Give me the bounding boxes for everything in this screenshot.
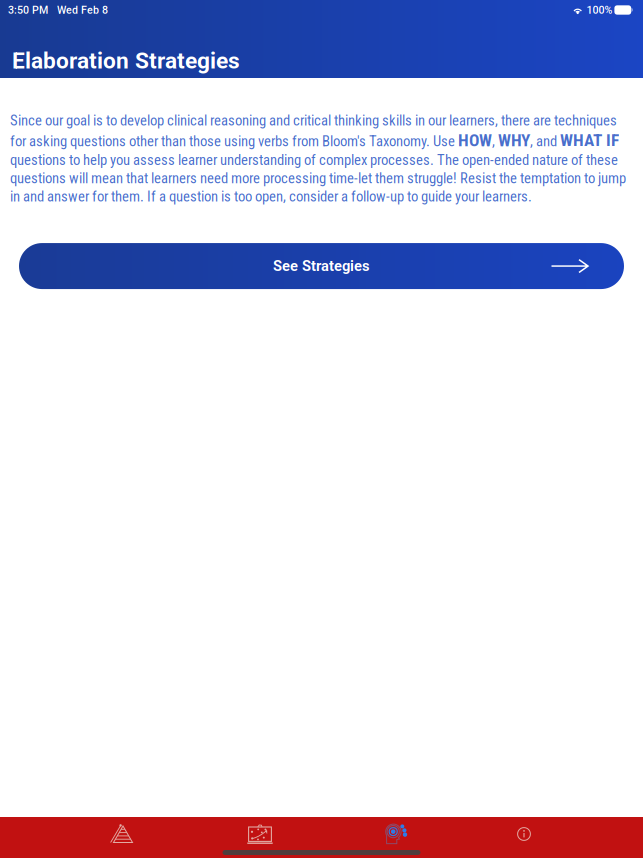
button[interactable]: Active Learning xyxy=(217,818,303,850)
staticText: Since our goal is to develop clinical re… xyxy=(10,112,626,205)
staticText: 100% xyxy=(586,4,612,16)
staticText: Elaboration Strategies xyxy=(12,47,240,74)
button[interactable]: Elaboration Strategies xyxy=(352,818,438,850)
staticText: 3:50 PM xyxy=(8,4,48,16)
button[interactable]: About xyxy=(481,818,567,850)
staticText: Wed Feb 8 xyxy=(57,4,108,16)
button[interactable]: Bloom's Taxonomy xyxy=(78,818,164,850)
staticText: See Strategies xyxy=(273,257,370,275)
button[interactable]: See Strategies xyxy=(19,243,624,289)
